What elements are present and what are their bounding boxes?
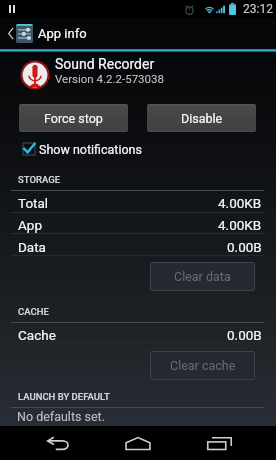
staticText: Version 4.2.2-573038	[55, 72, 164, 85]
staticText: App	[18, 217, 42, 233]
button[interactable]: Disable	[147, 104, 256, 132]
staticText: Disable	[181, 111, 223, 126]
staticText: 4.00KB	[218, 195, 262, 211]
staticText: 23:12	[243, 2, 273, 16]
staticText: STORAGE	[18, 174, 61, 185]
staticText: Cache	[18, 327, 56, 343]
staticText: Data	[18, 239, 46, 255]
button[interactable]: Clear data	[150, 262, 255, 291]
button[interactable]: Navigate up	[0, 18, 35, 49]
staticText: Clear data	[174, 269, 231, 284]
staticText: 0.00B	[227, 327, 262, 343]
button[interactable]: Data	[18, 236, 262, 257]
staticText: LAUNCH BY DEFAULT	[18, 391, 110, 402]
button[interactable]: Show notifications	[23, 140, 142, 158]
staticText: Total	[18, 195, 49, 211]
button[interactable]: Cache	[18, 324, 262, 345]
staticText: 4.00KB	[218, 217, 262, 233]
staticText: Sound Recorder	[55, 56, 155, 72]
staticText: No defaults set.	[17, 409, 106, 424]
button[interactable]: Total	[18, 192, 262, 213]
staticText: 0.00B	[227, 239, 262, 255]
button[interactable]: Home	[113, 427, 163, 459]
button[interactable]: Recent apps	[194, 427, 244, 459]
staticText: CACHE	[18, 306, 49, 317]
staticText: Force stop	[44, 111, 103, 126]
staticText: Show notifications	[39, 142, 142, 157]
button[interactable]: Back	[33, 427, 83, 459]
button[interactable]: Force stop	[19, 104, 128, 132]
staticText: App info	[38, 26, 87, 41]
button[interactable]: Clear cache	[150, 351, 255, 380]
staticText: Clear cache	[170, 358, 236, 373]
button[interactable]: App	[18, 214, 262, 235]
